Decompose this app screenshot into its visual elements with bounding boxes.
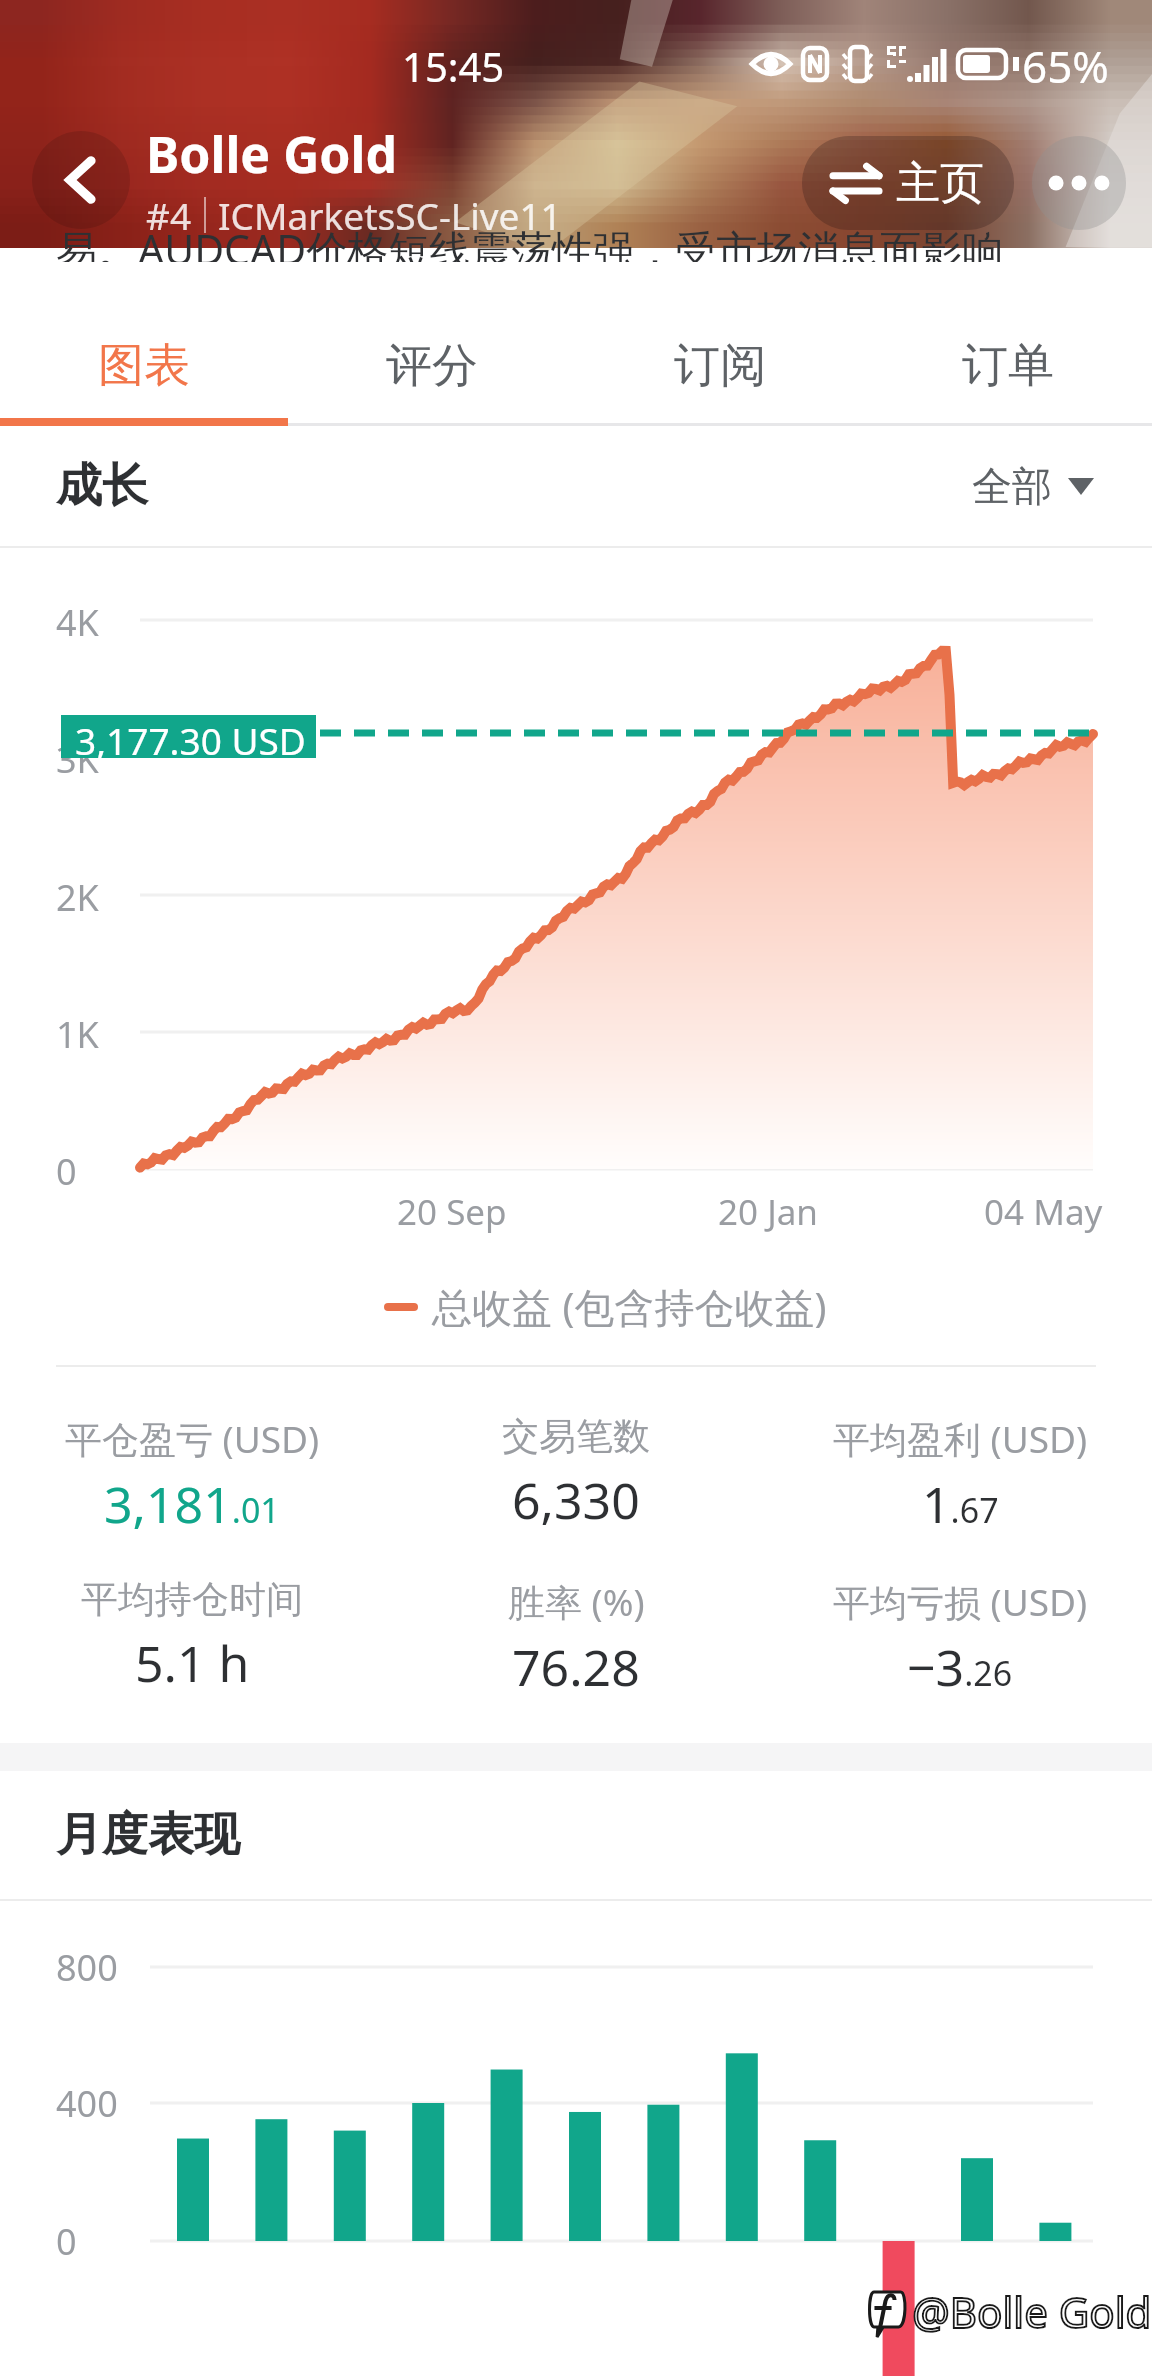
staticText: 1.67	[922, 1470, 999, 1538]
staticText: 76.28	[512, 1633, 640, 1701]
staticText: 平均亏损 (USD)	[833, 1576, 1088, 1627]
staticText: 平均持仓时间	[81, 1576, 303, 1623]
staticText: 65%	[1022, 36, 1109, 96]
staticText: 总收益 (包含持仓收益)	[432, 1279, 827, 1334]
staticText: 成长	[56, 457, 148, 515]
staticText: 0	[56, 2217, 77, 2266]
button[interactable]: 主页	[802, 136, 1014, 230]
staticText: 15:45	[402, 39, 505, 93]
staticText: 全部	[972, 461, 1052, 511]
staticText: 评分	[386, 337, 478, 395]
staticText: 平仓盈亏 (USD)	[65, 1413, 320, 1464]
button[interactable]: 图表	[0, 314, 288, 418]
button[interactable]: 订阅	[576, 314, 864, 418]
staticText: 3,181.01	[104, 1470, 280, 1538]
staticText: 平均盈利 (USD)	[833, 1413, 1088, 1464]
staticText: 04 May	[984, 1188, 1103, 1236]
button[interactable]: More options	[1032, 136, 1126, 230]
staticText: ICMarketsSC-Live11	[218, 190, 562, 240]
staticText: 0	[56, 1147, 77, 1196]
staticText: 3K	[56, 735, 99, 784]
staticText: 3,177.30 USD	[75, 715, 306, 758]
staticText: 2K	[56, 873, 99, 922]
button[interactable]: 全部	[972, 461, 1094, 511]
staticText: 主页	[896, 156, 984, 211]
staticText: 1K	[56, 1010, 99, 1059]
staticText: #4	[146, 190, 192, 240]
staticText: 交易笔数	[502, 1413, 650, 1460]
button[interactable]: 订单	[864, 314, 1152, 418]
staticText: 月度表现	[56, 1806, 240, 1864]
staticText: 胜率 (%)	[508, 1576, 645, 1627]
staticText: 4K	[56, 598, 99, 647]
staticText: 400	[56, 2079, 118, 2128]
staticText: 20 Jan	[718, 1188, 818, 1236]
staticText: 订阅	[674, 337, 766, 395]
staticText: 6,330	[512, 1466, 640, 1534]
staticText: 20 Sep	[397, 1188, 507, 1236]
button[interactable]: Back	[32, 131, 130, 229]
staticText: −3.26	[907, 1633, 1013, 1701]
staticText: Bolle Gold	[146, 120, 398, 188]
staticText: 订单	[962, 337, 1054, 395]
button[interactable]: 评分	[288, 314, 576, 418]
staticText: 易。AUDCAD价格短线震荡性强，受市场消息面影响小，...	[56, 221, 1104, 262]
staticText: @Bolle Gold	[912, 2283, 1152, 2340]
staticText: 5.1 h	[135, 1629, 250, 1697]
staticText: 图表	[98, 337, 190, 395]
staticText: 800	[56, 1943, 118, 1992]
